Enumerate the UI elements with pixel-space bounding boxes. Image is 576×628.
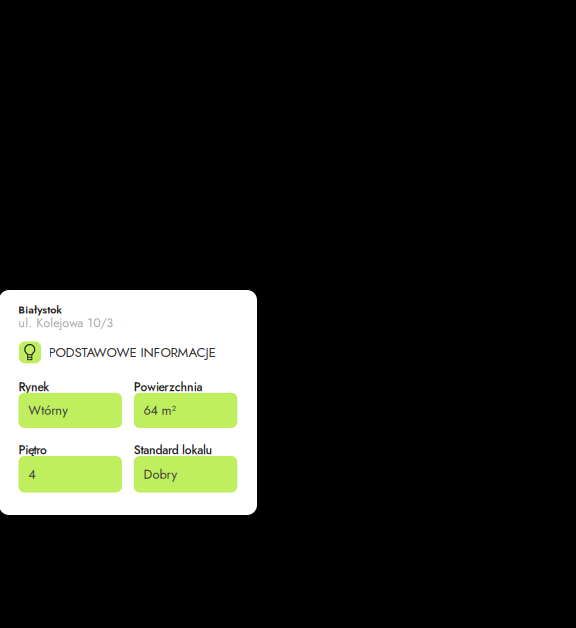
staticText: Powierzchnia xyxy=(134,378,202,396)
staticText: Białystok xyxy=(18,302,62,317)
button[interactable]: PODSTAWOWE INFORMACJE xyxy=(19,341,216,363)
staticText: Standard lokalu xyxy=(134,441,213,459)
button[interactable]: 4 xyxy=(18,456,122,492)
staticText: Dobry xyxy=(144,465,178,483)
staticText: PODSTAWOWE INFORMACJE xyxy=(49,343,216,362)
button[interactable]: 64 m² xyxy=(134,393,237,428)
staticText: Wtórny xyxy=(28,401,68,420)
staticText: Piętro xyxy=(18,441,47,459)
staticText: 4 xyxy=(28,465,35,483)
staticText: 64 m² xyxy=(144,401,176,420)
staticText: Rynek xyxy=(18,378,49,396)
staticText: ul. Kolejowa 10/3 xyxy=(18,314,113,332)
button[interactable]: Dobry xyxy=(134,456,237,492)
button[interactable]: Wtórny xyxy=(18,393,122,428)
